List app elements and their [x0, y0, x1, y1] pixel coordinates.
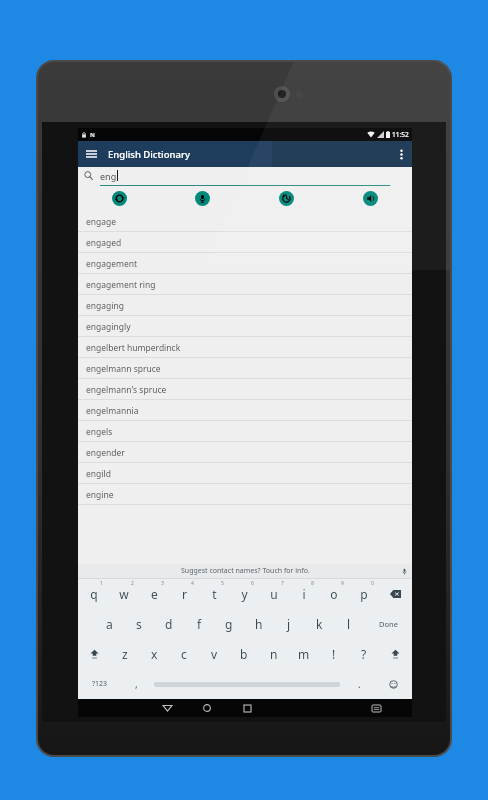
staticText: f — [197, 616, 202, 632]
staticText: 7 — [281, 580, 284, 587]
button[interactable]: Open navigation drawer — [78, 141, 104, 167]
staticText: p — [360, 586, 368, 602]
button[interactable]: m — [289, 639, 319, 669]
button[interactable]: g — [214, 609, 244, 639]
button[interactable]: engild — [78, 463, 412, 484]
staticText: engage — [86, 216, 117, 228]
button[interactable]: l — [334, 609, 364, 639]
button[interactable]: engine — [78, 484, 412, 505]
button[interactable]: Home — [187, 699, 227, 717]
button[interactable]: engaged — [78, 232, 412, 253]
button[interactable]: ?123 — [78, 669, 122, 699]
button[interactable]: r — [169, 579, 199, 609]
staticText: engaged — [86, 237, 122, 249]
button[interactable]: Space — [150, 669, 344, 699]
staticText: x — [151, 646, 158, 662]
staticText: r — [182, 586, 187, 602]
button[interactable]: engagement ring — [78, 274, 412, 295]
staticText: engagement ring — [86, 279, 156, 291]
button[interactable]: s — [124, 609, 154, 639]
button[interactable]: p — [349, 579, 379, 609]
staticText: h — [255, 616, 263, 632]
button[interactable]: x — [139, 639, 169, 669]
staticText: 0 — [371, 580, 374, 587]
staticText: 3 — [161, 580, 164, 587]
button[interactable]: engelmann spruce — [78, 358, 412, 379]
button[interactable]: Shift — [78, 639, 110, 669]
staticText: engelbert humperdinck — [86, 342, 181, 354]
button[interactable]: d — [154, 609, 184, 639]
staticText: engelmannia — [86, 405, 139, 417]
button[interactable]: Shift — [379, 639, 412, 669]
staticText: engender — [86, 447, 125, 459]
staticText: z — [122, 646, 128, 662]
button[interactable]: u — [259, 579, 289, 609]
staticText: engelmann spruce — [86, 363, 161, 375]
button[interactable]: engagement — [78, 253, 412, 274]
staticText: N — [90, 131, 95, 139]
button[interactable]: e — [139, 579, 169, 609]
button[interactable]: eng — [78, 167, 412, 184]
button[interactable]: Swap languages — [78, 187, 161, 209]
button[interactable]: o — [319, 579, 349, 609]
button[interactable]: c — [169, 639, 199, 669]
staticText: engels — [86, 426, 113, 438]
staticText: n — [270, 646, 278, 662]
button[interactable]: w — [109, 579, 139, 609]
button[interactable]: t — [199, 579, 229, 609]
button[interactable]: ! — [319, 639, 349, 669]
button[interactable]: engender — [78, 442, 412, 463]
button[interactable]: k — [304, 609, 334, 639]
staticText: l — [347, 616, 351, 632]
staticText: . — [358, 677, 361, 691]
button[interactable]: . — [344, 669, 375, 699]
staticText: 2 — [131, 580, 134, 587]
button[interactable]: Back — [147, 699, 187, 717]
button[interactable]: Done — [364, 609, 412, 639]
button[interactable]: Recent apps — [227, 699, 267, 717]
button[interactable]: Emoji — [375, 669, 412, 699]
button[interactable]: Suggest contact names? Touch for info. — [78, 564, 412, 578]
staticText: 9 — [341, 580, 344, 587]
button[interactable]: b — [229, 639, 259, 669]
button[interactable]: Pronounce — [328, 187, 412, 209]
button[interactable]: a — [94, 609, 124, 639]
button[interactable]: History — [244, 187, 328, 209]
button[interactable]: f — [184, 609, 214, 639]
staticText: u — [270, 586, 278, 602]
button[interactable]: Voice input — [161, 187, 244, 209]
staticText: a — [106, 616, 113, 632]
staticText: 5 — [221, 580, 224, 587]
button[interactable]: engage — [78, 211, 412, 232]
button[interactable]: ? — [349, 639, 379, 669]
button[interactable]: z — [110, 639, 139, 669]
button[interactable]: , — [122, 669, 150, 699]
staticText: e — [151, 586, 158, 602]
staticText: eng — [100, 170, 117, 182]
staticText: j — [287, 616, 291, 632]
staticText: 1 — [100, 580, 103, 587]
button[interactable]: j — [274, 609, 304, 639]
button[interactable]: More options — [390, 141, 412, 167]
button[interactable]: v — [199, 639, 229, 669]
button[interactable]: q — [78, 579, 109, 609]
button[interactable]: Backspace — [379, 579, 412, 609]
button[interactable]: engagingly — [78, 316, 412, 337]
staticText: ! — [332, 646, 336, 662]
button[interactable]: n — [259, 639, 289, 669]
button[interactable]: engels — [78, 421, 412, 442]
button[interactable]: Switch keyboard — [356, 699, 396, 717]
staticText: 8 — [311, 580, 314, 587]
staticText: engagement — [86, 258, 138, 270]
button[interactable]: y — [229, 579, 259, 609]
button[interactable]: engelmann's spruce — [78, 379, 412, 400]
staticText: 6 — [251, 580, 254, 587]
button[interactable]: engelmannia — [78, 400, 412, 421]
button[interactable]: h — [244, 609, 274, 639]
staticText: ? — [361, 646, 367, 662]
button[interactable]: i — [289, 579, 319, 609]
button[interactable]: engelbert humperdinck — [78, 337, 412, 358]
staticText: y — [241, 586, 248, 602]
button[interactable]: engaging — [78, 295, 412, 316]
staticText: Done — [379, 619, 398, 629]
